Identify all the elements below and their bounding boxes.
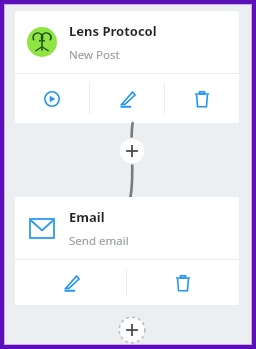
button[interactable]: Delete: [165, 74, 239, 123]
button[interactable]: Run: [15, 74, 89, 123]
staticText: Email: [69, 208, 105, 226]
button[interactable]: Add step: [118, 137, 146, 165]
button[interactable]: Edit: [15, 260, 126, 305]
button[interactable]: Add step: [118, 316, 146, 344]
button[interactable]: Edit: [90, 74, 164, 123]
button[interactable]: Delete: [127, 260, 239, 305]
staticText: Lens Protocol: [69, 22, 157, 40]
staticText: New Post: [69, 47, 120, 63]
staticText: Send email: [69, 233, 129, 249]
